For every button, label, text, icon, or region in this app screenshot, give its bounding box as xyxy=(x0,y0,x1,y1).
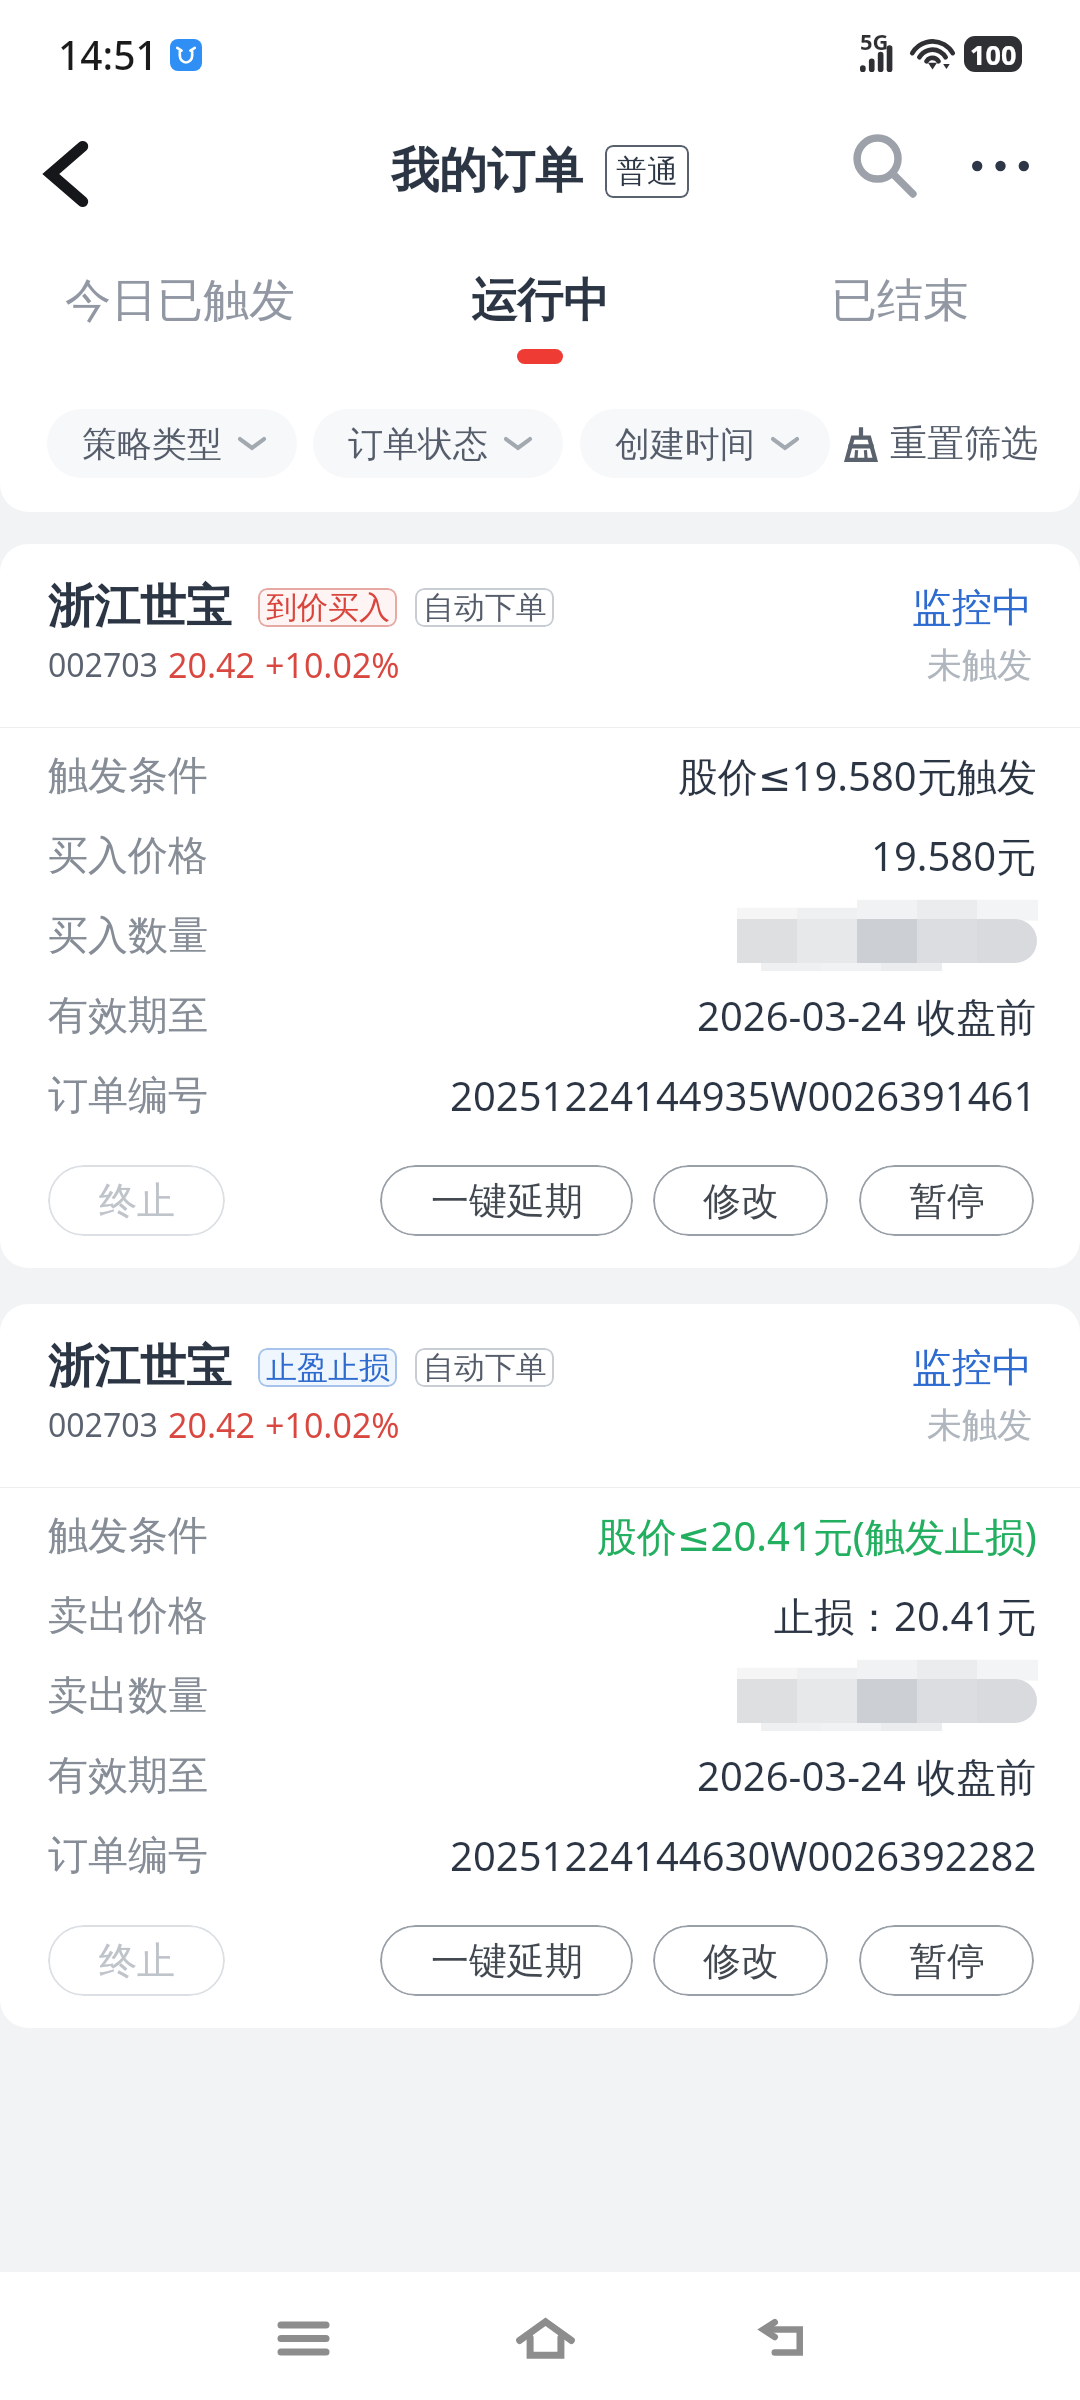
button[interactable]: 终止 xyxy=(48,1165,225,1236)
staticText: 我的订单 xyxy=(391,141,583,201)
staticText: 未触发 xyxy=(927,1403,1032,1447)
button[interactable]: Search xyxy=(825,108,945,224)
staticText: 监控中 xyxy=(912,582,1032,632)
staticText: 20.42 xyxy=(168,642,255,688)
staticText: 股价≤20.41元(触发止损) xyxy=(597,1508,1037,1563)
staticText: 重置筛选 xyxy=(890,420,1038,467)
button[interactable]: 策略类型 xyxy=(47,409,297,478)
staticText: 一键延期 xyxy=(431,1177,583,1225)
staticText: 19.580元 xyxy=(871,828,1037,883)
staticText: 买入价格 xyxy=(48,830,208,880)
staticText: 100 xyxy=(970,36,1017,72)
button[interactable]: Recents xyxy=(255,2290,351,2386)
staticText: 止盈止损 xyxy=(266,1348,390,1387)
staticText: 未触发 xyxy=(927,643,1032,687)
staticText: 自动下单 xyxy=(423,1348,547,1387)
staticText: 监控中 xyxy=(912,1342,1032,1392)
button[interactable]: Home xyxy=(497,2290,593,2386)
button[interactable]: 终止 xyxy=(48,1925,225,1996)
staticText: 有效期至 xyxy=(48,1750,208,1800)
staticText: 策略类型 xyxy=(82,422,222,466)
staticText: 修改 xyxy=(703,1177,779,1225)
staticText: 触发条件 xyxy=(48,750,208,800)
staticText: 订单编号 xyxy=(48,1830,208,1880)
button[interactable]: 重置筛选 xyxy=(844,420,1038,467)
staticText: 自动下单 xyxy=(423,588,547,627)
button[interactable]: 浙江世宝 xyxy=(0,1304,1080,2028)
staticText: 一键延期 xyxy=(431,1937,583,1985)
button[interactable]: Back xyxy=(733,2290,829,2386)
button[interactable]: 今日已触发 xyxy=(0,240,360,349)
staticText: 暂停 xyxy=(909,1937,985,1985)
button[interactable]: 修改 xyxy=(653,1165,828,1236)
staticText: 创建时间 xyxy=(615,422,755,466)
staticText: 今日已触发 xyxy=(65,272,295,330)
staticText: 5G xyxy=(860,26,889,56)
staticText: 002703 xyxy=(48,643,158,687)
staticText: 终止 xyxy=(99,1177,175,1225)
staticText: 2026-03-24 收盘前 xyxy=(697,1748,1037,1803)
staticText: 2026-03-24 收盘前 xyxy=(697,988,1037,1043)
staticText: 有效期至 xyxy=(48,990,208,1040)
staticText: 14:51 xyxy=(58,28,158,81)
staticText: 到价买入 xyxy=(266,588,390,627)
button[interactable]: 一键延期 xyxy=(380,1925,633,1996)
staticText: 修改 xyxy=(703,1937,779,1985)
staticText: +10.02% xyxy=(265,642,400,688)
staticText: 卖出数量 xyxy=(48,1670,208,1720)
staticText: 20.42 xyxy=(168,1402,255,1448)
button[interactable]: 运行中 xyxy=(360,240,720,364)
staticText: 浙江世宝 xyxy=(48,1338,232,1396)
staticText: 订单状态 xyxy=(348,422,488,466)
staticText: 002703 xyxy=(48,1403,158,1447)
staticText: 普通 xyxy=(616,152,678,191)
staticText: 运行中 xyxy=(471,272,609,330)
staticText: 浙江世宝 xyxy=(48,578,232,636)
staticText: 订单编号 xyxy=(48,1070,208,1120)
staticText: 股价≤19.580元触发 xyxy=(678,748,1037,803)
staticText: 20251224144630W0026392282 xyxy=(450,1828,1037,1882)
staticText: 暂停 xyxy=(909,1177,985,1225)
button[interactable]: 暂停 xyxy=(859,1925,1034,1996)
staticText: 买入数量 xyxy=(48,910,208,960)
button[interactable]: 订单状态 xyxy=(313,409,563,478)
staticText: 已结束 xyxy=(831,272,969,330)
button[interactable]: 创建时间 xyxy=(580,409,830,478)
button[interactable]: 暂停 xyxy=(859,1165,1034,1236)
button[interactable]: Back xyxy=(0,109,130,239)
button[interactable]: More options xyxy=(945,111,1055,221)
staticText: 卖出价格 xyxy=(48,1590,208,1640)
staticText: 终止 xyxy=(99,1937,175,1985)
button[interactable]: 一键延期 xyxy=(380,1165,633,1236)
button[interactable]: 已结束 xyxy=(720,240,1080,349)
staticText: +10.02% xyxy=(265,1402,400,1448)
button[interactable]: 浙江世宝 xyxy=(0,544,1080,1268)
staticText: 止损：20.41元 xyxy=(774,1588,1037,1643)
staticText: 20251224144935W0026391461 xyxy=(450,1068,1037,1122)
button[interactable]: 修改 xyxy=(653,1925,828,1996)
staticText: 触发条件 xyxy=(48,1510,208,1560)
